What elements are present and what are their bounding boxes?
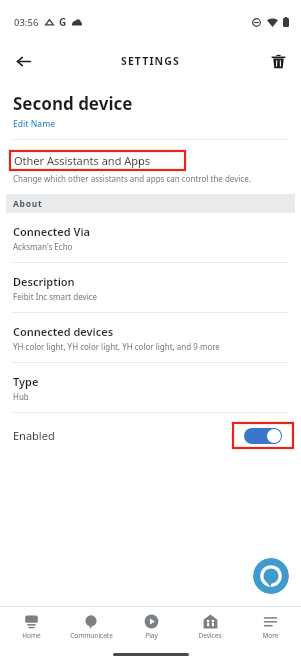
button[interactable]: Enabled toggle — [244, 428, 282, 444]
staticText: YH color light, YH color light, YH color… — [13, 341, 220, 352]
staticText: Connected Via — [13, 224, 90, 239]
button[interactable]: Devices — [181, 612, 239, 642]
staticText: Enabled — [13, 428, 55, 443]
button[interactable]: Play — [122, 612, 180, 642]
staticText: Type — [13, 374, 39, 389]
button[interactable]: Enabled — [0, 413, 301, 457]
button[interactable]: Alexa — [253, 558, 289, 594]
staticText: Home — [22, 631, 41, 640]
staticText: Play — [145, 631, 158, 640]
button[interactable]: Other Assistants and Apps — [0, 151, 301, 184]
button[interactable]: Communicate — [62, 613, 120, 642]
button[interactable]: Home — [2, 612, 60, 642]
button[interactable]: Type — [0, 363, 301, 412]
button[interactable]: Description — [0, 263, 301, 312]
staticText: Hub — [13, 391, 29, 402]
staticText: Description — [13, 274, 75, 289]
button[interactable]: Connected devices — [0, 313, 301, 362]
button[interactable]: Back — [8, 46, 38, 76]
staticText: Communicate — [70, 631, 113, 640]
staticText: Devices — [198, 631, 222, 640]
staticText: SETTINGS — [121, 54, 180, 68]
staticText: G — [59, 15, 67, 29]
button[interactable]: Edit Name — [13, 118, 56, 130]
staticText: Edit Name — [13, 118, 56, 130]
staticText: Other Assistants and Apps — [14, 153, 151, 168]
staticText: Feibit Inc smart device — [13, 291, 98, 302]
button[interactable]: More — [241, 612, 299, 642]
button[interactable]: Delete — [263, 46, 293, 76]
staticText: Connected devices — [13, 324, 114, 339]
staticText: More — [262, 631, 279, 640]
staticText: 03:56 — [14, 16, 39, 29]
button[interactable]: Connected Via — [0, 213, 301, 262]
staticText: Change which other assistants and apps c… — [13, 173, 251, 184]
staticText: Second device — [13, 92, 133, 115]
staticText: Acksman's Echo — [13, 241, 73, 252]
staticText: About — [13, 198, 43, 210]
